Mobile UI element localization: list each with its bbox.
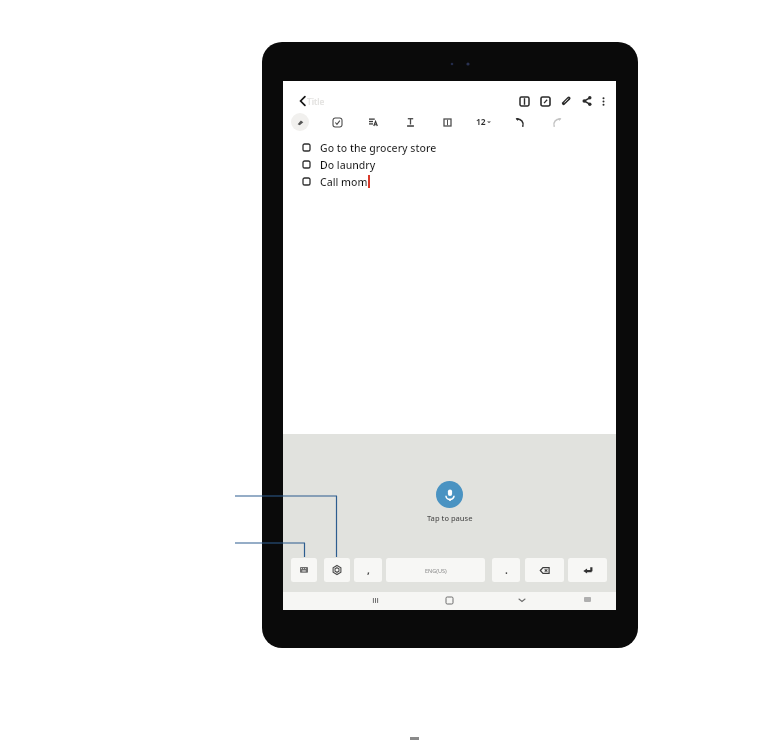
button[interactable]: Home xyxy=(440,591,458,609)
button[interactable]: Attach xyxy=(556,91,576,111)
button[interactable]: Period xyxy=(492,558,520,582)
button[interactable]: Redo xyxy=(548,113,566,131)
staticText: Do laundry xyxy=(320,158,376,172)
button[interactable]: Table xyxy=(438,113,456,131)
button[interactable]: Comma xyxy=(354,558,382,582)
button[interactable]: Go to the grocery store xyxy=(303,139,503,156)
button[interactable]: More options xyxy=(593,91,613,111)
button[interactable]: Share xyxy=(577,91,597,111)
button[interactable]: Keyboard layout xyxy=(291,558,317,582)
button[interactable]: Enter xyxy=(568,558,607,582)
button[interactable]: Backspace xyxy=(525,558,564,582)
button[interactable]: Text color xyxy=(401,113,419,131)
staticText: Go to the grocery store xyxy=(320,141,437,155)
button[interactable]: Hide keyboard xyxy=(513,591,531,609)
staticText: Title xyxy=(307,96,325,108)
button[interactable]: Do laundry xyxy=(303,156,503,173)
button[interactable]: Call mom xyxy=(303,173,503,190)
button[interactable]: Back xyxy=(288,89,318,113)
staticText: , xyxy=(367,563,370,577)
button[interactable]: Pen xyxy=(291,113,309,131)
button[interactable]: Checklist xyxy=(328,113,346,131)
button[interactable]: Space xyxy=(386,558,485,582)
button[interactable]: 12 xyxy=(470,114,496,130)
staticText: 12 xyxy=(476,116,486,128)
staticText: . xyxy=(505,563,508,577)
button[interactable]: Undo xyxy=(511,113,529,131)
staticText: ENG(US) xyxy=(425,567,447,574)
button[interactable]: Settings xyxy=(324,558,350,582)
staticText: Tap to pause xyxy=(427,513,473,523)
button[interactable]: Keyboard xyxy=(578,591,596,609)
button[interactable]: Tap to pause xyxy=(436,481,463,508)
button[interactable]: Recent apps xyxy=(366,591,384,609)
button[interactable]: Split view xyxy=(514,91,534,111)
staticText: Call mom xyxy=(320,175,368,189)
button[interactable]: Note xyxy=(535,91,555,111)
button[interactable]: Paragraph style xyxy=(364,113,382,131)
